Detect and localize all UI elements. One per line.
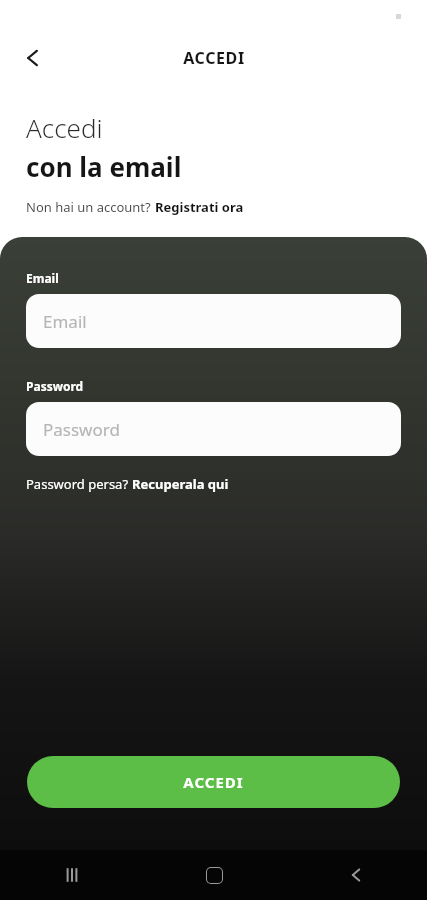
staticText: Password [26, 378, 84, 394]
button[interactable]: Non hai un account? [26, 198, 244, 216]
staticText: Email [43, 310, 87, 333]
staticText: Non hai un account? [26, 198, 155, 216]
staticText: ACCEDI [183, 772, 244, 792]
button[interactable]: Back [9, 34, 57, 82]
button[interactable]: Email [26, 294, 401, 348]
button[interactable]: Recent apps [0, 850, 143, 900]
staticText: Recuperala qui [132, 475, 229, 493]
staticText: Email [26, 270, 59, 286]
button[interactable]: Password persa? [26, 475, 229, 493]
button[interactable]: Password [26, 402, 401, 456]
staticText: Registrati ora [155, 198, 244, 216]
button[interactable]: Back [285, 850, 427, 900]
staticText: Password [43, 418, 120, 441]
staticText: con la email [26, 149, 182, 184]
staticText: ACCEDI [183, 47, 245, 69]
staticText: Accedi [26, 110, 103, 145]
button[interactable]: ACCEDI [27, 756, 400, 808]
button[interactable]: Home [143, 850, 285, 900]
staticText: Password persa? [26, 475, 132, 493]
